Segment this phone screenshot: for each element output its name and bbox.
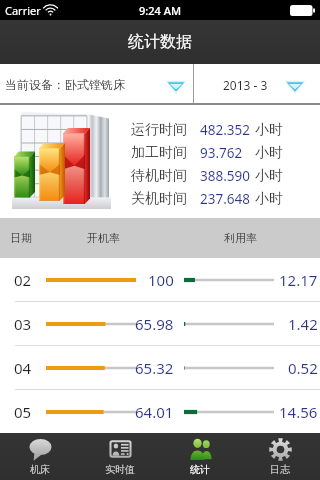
- staticText: 日志: [270, 463, 290, 476]
- staticText: 小时: [255, 121, 283, 139]
- staticText: 65.32: [135, 358, 174, 378]
- staticText: 14.56: [279, 402, 318, 422]
- staticText: 利用率: [224, 231, 257, 245]
- button[interactable]: 统计: [160, 433, 240, 480]
- staticText: 0.52: [288, 358, 318, 378]
- staticText: 当前设备：卧式镗铣床: [5, 77, 125, 92]
- staticText: 93.762: [200, 144, 243, 162]
- button[interactable]: 02: [0, 258, 320, 301]
- button[interactable]: 实时值: [80, 433, 160, 480]
- staticText: 03: [14, 314, 32, 334]
- staticText: 2013 - 3: [223, 77, 268, 93]
- button[interactable]: 机床: [0, 433, 80, 480]
- staticText: Carrier: [5, 3, 41, 18]
- other: 实时值: [109, 438, 132, 461]
- staticText: 05: [14, 402, 32, 422]
- staticText: 小时: [255, 167, 283, 185]
- staticText: 1.42: [288, 314, 318, 334]
- staticText: 482.352: [200, 121, 250, 139]
- staticText: 开机率: [87, 231, 120, 245]
- button[interactable]: 04: [0, 346, 320, 389]
- staticText: 统计数据: [128, 32, 192, 52]
- other: 日志: [269, 438, 292, 461]
- staticText: 关机时间: [131, 190, 187, 208]
- staticText: 统计: [190, 463, 210, 476]
- button[interactable]: 日志: [240, 433, 320, 480]
- staticText: 02: [14, 270, 32, 290]
- other: Battery: [290, 5, 315, 16]
- button[interactable]: 当前设备：卧式镗铣床: [0, 64, 193, 105]
- staticText: 64.01: [135, 402, 174, 422]
- staticText: 237.648: [200, 190, 250, 208]
- staticText: 待机时间: [131, 167, 187, 185]
- button[interactable]: 03: [0, 302, 320, 345]
- staticText: 加工时间: [131, 144, 187, 162]
- staticText: 机床: [30, 463, 50, 476]
- staticText: 小时: [255, 190, 283, 208]
- button[interactable]: 05: [0, 390, 320, 433]
- other: 机床: [29, 438, 52, 461]
- staticText: 04: [14, 358, 32, 378]
- staticText: 实时值: [105, 463, 135, 476]
- staticText: 12.17: [279, 270, 318, 290]
- staticText: 运行时间: [131, 121, 187, 139]
- button[interactable]: 2013 - 3: [194, 64, 320, 105]
- other: 统计: [189, 438, 212, 461]
- staticText: 9:24 AM: [139, 3, 182, 18]
- staticText: 100: [148, 270, 174, 290]
- staticText: 388.590: [200, 167, 250, 185]
- staticText: 日期: [10, 231, 32, 245]
- staticText: 小时: [255, 144, 283, 162]
- staticText: 65.98: [135, 314, 174, 334]
